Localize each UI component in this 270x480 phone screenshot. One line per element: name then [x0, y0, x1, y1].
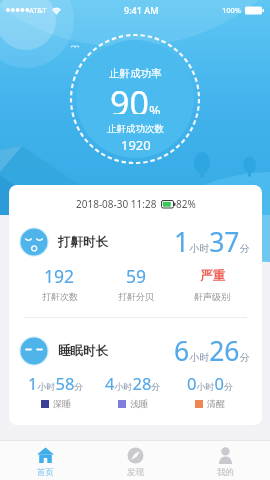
staticText: 1小时58分: [28, 372, 84, 394]
button[interactable]: 止鼾成功率: [107, 66, 164, 152]
staticText: 0小时0分: [187, 372, 233, 394]
staticText: 我的: [217, 467, 234, 478]
staticText: 鼾声级别: [194, 291, 230, 302]
button[interactable]: 2018-08-30 11:28: [9, 185, 262, 223]
button[interactable]: 192: [21, 261, 98, 302]
staticText: 2018-08-30 11:28: [76, 197, 157, 211]
staticText: 192: [44, 264, 75, 288]
button[interactable]: 首页: [0, 447, 90, 478]
staticText: 82%: [176, 197, 196, 211]
staticText: 100%: [222, 5, 242, 15]
button[interactable]: 发现: [90, 447, 180, 478]
button[interactable]: 1小时58分: [17, 370, 94, 409]
staticText: 睡眠时长: [58, 343, 108, 359]
button[interactable]: 打鼾时长: [19, 223, 250, 261]
button[interactable]: 严重: [174, 261, 250, 302]
staticText: 6小时26分: [174, 333, 250, 369]
button[interactable]: 睡眠时长: [19, 332, 250, 370]
staticText: 9:41 AM: [124, 4, 159, 16]
staticText: 清醒: [207, 398, 225, 409]
staticText: 深睡: [53, 398, 71, 409]
button[interactable]: 4小时28分: [94, 370, 171, 409]
staticText: 59: [126, 264, 147, 288]
button[interactable]: 0小时0分: [171, 370, 248, 409]
staticText: 止鼾成功率: [109, 67, 162, 80]
button[interactable]: 59: [98, 261, 174, 302]
staticText: 止鼾成功次数: [107, 123, 164, 135]
button[interactable]: 我的: [180, 447, 270, 478]
staticText: 浅睡: [130, 398, 148, 409]
staticText: 90%: [110, 80, 161, 114]
staticText: 4小时28分: [105, 372, 161, 394]
staticText: 1920: [121, 136, 151, 152]
staticText: 首页: [37, 467, 54, 478]
staticText: 1小时37分: [174, 224, 250, 260]
staticText: AT&T: [29, 5, 47, 15]
staticText: 打鼾分贝: [118, 291, 154, 302]
staticText: 发现: [127, 467, 144, 478]
staticText: 打鼾次数: [42, 291, 78, 302]
staticText: 打鼾时长: [58, 234, 108, 250]
staticText: 严重: [200, 268, 225, 284]
